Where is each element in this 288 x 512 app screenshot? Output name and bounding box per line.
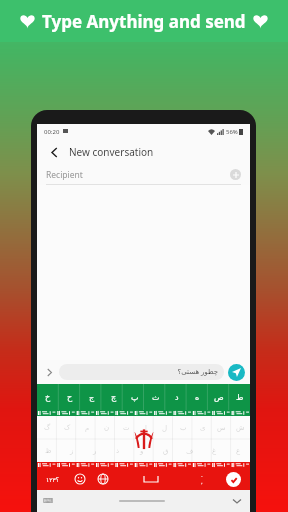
staticText: ⌨ xyxy=(43,497,54,505)
button[interactable]: ظ xyxy=(37,439,60,462)
button[interactable]: ص xyxy=(208,384,229,410)
staticText: غ xyxy=(212,447,217,455)
button[interactable]: ز xyxy=(60,439,83,462)
staticText: ل xyxy=(162,424,168,432)
staticText: چ xyxy=(111,393,117,402)
staticText: ه xyxy=(195,393,200,402)
staticText: 56% xyxy=(226,128,238,136)
button[interactable]: پ xyxy=(124,384,145,410)
button[interactable]: ر xyxy=(83,439,106,462)
button[interactable]: ن xyxy=(97,416,117,439)
button[interactable]: ش xyxy=(231,416,250,439)
button[interactable]: Expand xyxy=(42,365,56,379)
button[interactable]: ؟۱۲۳ xyxy=(37,468,68,490)
staticText: س xyxy=(217,424,226,432)
button[interactable]: گ xyxy=(37,416,57,439)
button[interactable]: ث xyxy=(145,384,166,410)
staticText: ؟۱۲۳ xyxy=(46,476,59,483)
button[interactable]: م xyxy=(77,416,97,439)
button[interactable]: Hide keyboard xyxy=(230,494,244,508)
button[interactable]: ذ xyxy=(106,439,130,462)
button[interactable]: ه xyxy=(187,384,208,410)
staticText: ذ xyxy=(116,447,120,455)
button[interactable]: . , xyxy=(187,468,216,490)
button[interactable]: و xyxy=(130,439,154,462)
button[interactable]: ل xyxy=(155,416,174,439)
button[interactable]: ق xyxy=(154,439,178,462)
button[interactable]: چطور هستی؟ xyxy=(59,364,224,380)
button[interactable]: Change language xyxy=(91,468,114,490)
staticText: خ xyxy=(45,393,51,402)
staticText: ز xyxy=(70,447,74,455)
staticText: ن xyxy=(104,424,110,432)
staticText: ک xyxy=(64,424,71,432)
staticText: ط xyxy=(236,393,244,402)
staticText: ش xyxy=(236,424,245,432)
staticText: ی xyxy=(200,424,206,432)
button[interactable]: ح xyxy=(59,384,81,410)
button[interactable]: چ xyxy=(103,384,124,410)
button[interactable]: ف xyxy=(178,439,202,462)
button[interactable]: د xyxy=(166,384,187,410)
staticText: ث xyxy=(152,393,160,402)
button[interactable]: Send xyxy=(228,364,245,381)
button[interactable]: ب xyxy=(174,416,193,439)
button[interactable]: ی xyxy=(193,416,212,439)
button[interactable]: ج xyxy=(81,384,103,410)
staticText: چطور هستی؟ xyxy=(177,367,218,377)
button[interactable]: خ xyxy=(37,384,59,410)
staticText: م xyxy=(85,424,90,432)
staticText: ح xyxy=(67,393,73,402)
staticText: ا xyxy=(145,424,147,432)
staticText: ق xyxy=(163,447,169,455)
staticText: ر xyxy=(93,447,97,455)
button[interactable]: Recipient xyxy=(46,165,241,184)
button[interactable]: ط xyxy=(229,384,250,410)
staticText: ص xyxy=(214,393,224,402)
staticText: گ xyxy=(44,424,51,432)
staticText: د xyxy=(175,393,179,402)
staticText: Recipient xyxy=(46,169,83,181)
button[interactable]: س xyxy=(212,416,231,439)
staticText: Type Anything and send xyxy=(42,10,246,33)
staticText: 00:20 xyxy=(44,128,60,136)
staticText: . , xyxy=(201,472,203,486)
button[interactable]: ع xyxy=(226,439,250,462)
button[interactable]: ا xyxy=(136,416,155,439)
staticText: ظ xyxy=(45,447,52,455)
button[interactable]: غ xyxy=(202,439,226,462)
button[interactable]: Emoji xyxy=(68,468,91,490)
staticText: ع xyxy=(236,447,241,455)
staticText: ف xyxy=(186,447,194,455)
button[interactable]: Add recipient xyxy=(230,169,241,180)
button[interactable]: Space xyxy=(114,468,187,490)
button[interactable]: ت xyxy=(117,416,136,439)
staticText: ت xyxy=(123,424,130,432)
staticText: پ xyxy=(131,393,139,402)
staticText: ج xyxy=(89,393,95,402)
button[interactable]: ک xyxy=(57,416,77,439)
button[interactable]: Back xyxy=(45,143,63,161)
button[interactable]: Enter xyxy=(216,468,250,490)
staticText: و xyxy=(140,447,144,455)
staticText: New conversation xyxy=(69,145,154,159)
staticText: ب xyxy=(180,424,187,432)
